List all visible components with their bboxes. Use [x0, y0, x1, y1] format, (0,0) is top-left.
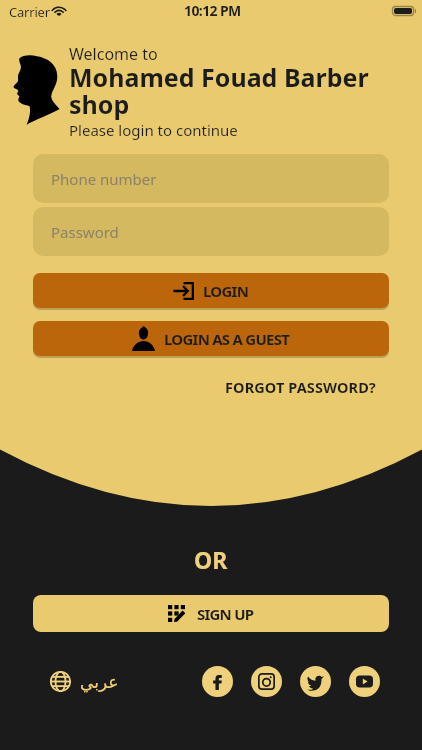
staticText: عربي [80, 672, 119, 692]
button[interactable]: LOGIN [33, 273, 389, 308]
button[interactable]: LOGIN AS A GUEST [33, 321, 389, 356]
staticText: Password [51, 222, 119, 242]
staticText: SIGN UP [197, 604, 254, 624]
button[interactable]: Twitter [300, 666, 331, 697]
button[interactable]: Instagram [251, 666, 282, 697]
staticText: FORGOT PASSWORD? [225, 377, 376, 397]
button[interactable]: Facebook [202, 666, 233, 697]
button[interactable]: FORGOT PASSWORD? [223, 375, 378, 399]
staticText: OR [194, 544, 228, 575]
button[interactable]: Phone number [33, 154, 389, 203]
staticText: Phone number [51, 169, 157, 189]
staticText: Welcome to [69, 43, 158, 65]
button[interactable]: Password [33, 207, 389, 256]
button[interactable]: SIGN UP [33, 595, 389, 632]
staticText: LOGIN [203, 281, 249, 301]
staticText: Please login to continue [69, 120, 238, 140]
staticText: LOGIN AS A GUEST [164, 329, 290, 349]
staticText: Carrier [9, 3, 50, 21]
staticText: Mohamed Fouad Barber shop [69, 60, 381, 122]
button[interactable]: عربي [48, 668, 121, 695]
staticText: 10:12 PM [184, 1, 241, 20]
button[interactable]: YouTube [349, 666, 380, 697]
